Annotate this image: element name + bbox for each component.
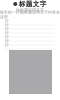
staticText: 短标题说明文字 [16,7,44,12]
staticText: 行 [5,30,9,35]
staticText: 行 [5,34,9,39]
staticText: 行 [5,38,9,43]
staticText: 标题文字 [19,0,47,8]
staticText: 行 [5,42,9,47]
staticText: 行 [5,22,9,27]
staticText: 较长的一行副标题说明文字内容在这里 [0,10,60,19]
staticText: 行 [5,26,9,31]
staticText: 行 [5,18,9,23]
